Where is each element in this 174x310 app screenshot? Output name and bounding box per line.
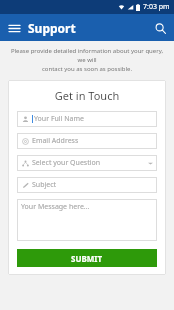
staticText: Your Message here... bbox=[21, 202, 90, 212]
staticText: Your Full Name bbox=[34, 114, 153, 124]
button[interactable]: Select your Question bbox=[17, 155, 157, 171]
staticText: Email Address bbox=[32, 136, 153, 146]
button[interactable]: Email Address bbox=[17, 133, 157, 149]
button[interactable]: Open navigation menu bbox=[4, 18, 24, 38]
staticText: 7:03 pm bbox=[143, 2, 170, 12]
staticText: Please provide detailed information abou… bbox=[8, 47, 166, 73]
button[interactable]: Search bbox=[150, 18, 170, 38]
button[interactable]: Subject bbox=[17, 177, 157, 193]
staticText: Support bbox=[28, 20, 76, 36]
staticText: Subject bbox=[32, 180, 153, 190]
button[interactable]: SUBMIT bbox=[17, 249, 157, 267]
staticText: SUBMIT bbox=[71, 253, 103, 264]
button[interactable]: Your Full Name bbox=[17, 111, 157, 127]
staticText: Select your Question bbox=[32, 158, 148, 168]
button[interactable]: Your Message here... bbox=[17, 199, 157, 241]
staticText: Get in Touch bbox=[17, 88, 157, 103]
